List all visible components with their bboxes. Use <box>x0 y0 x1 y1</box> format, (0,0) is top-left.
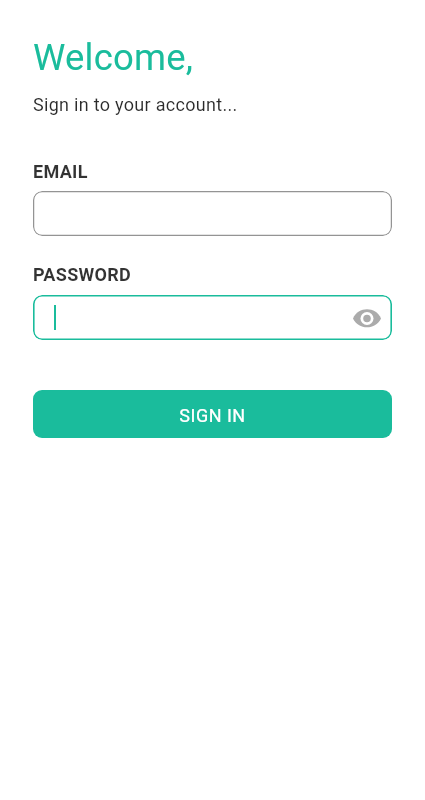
button[interactable]: SIGN IN <box>33 390 392 438</box>
staticText: EMAIL <box>33 161 88 182</box>
staticText: PASSWORD <box>33 264 132 285</box>
button[interactable]: Show password <box>351 302 383 334</box>
staticText: SIGN IN <box>179 405 246 426</box>
button[interactable] <box>33 191 392 236</box>
staticText: Sign in to your account... <box>33 94 238 115</box>
staticText: Welcome, <box>33 36 194 79</box>
button[interactable]: Show password <box>33 295 392 340</box>
